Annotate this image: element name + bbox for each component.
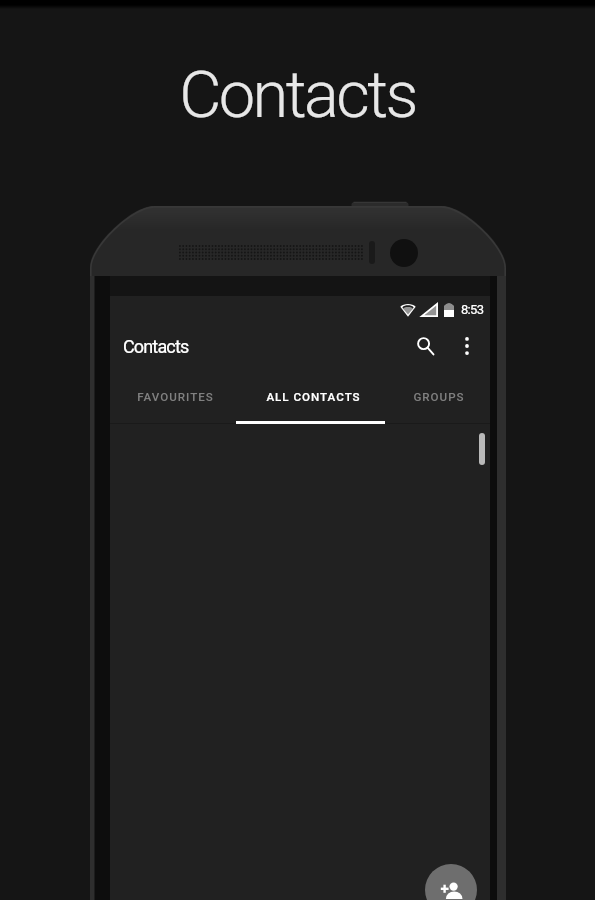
button[interactable]: Search: [403, 324, 447, 368]
button[interactable]: Add contact: [425, 864, 477, 900]
button[interactable]: More options: [447, 326, 487, 366]
button[interactable]: GROUPS: [387, 376, 490, 424]
staticText: Contacts: [123, 336, 189, 357]
staticText: 8:53: [461, 302, 484, 317]
staticText: FAVOURITES: [137, 390, 214, 404]
button[interactable]: ALL CONTACTS: [240, 376, 387, 424]
staticText: Contacts: [0, 57, 595, 133]
button[interactable]: FAVOURITES: [110, 376, 240, 424]
staticText: GROUPS: [413, 390, 465, 404]
staticText: ALL CONTACTS: [266, 390, 361, 404]
